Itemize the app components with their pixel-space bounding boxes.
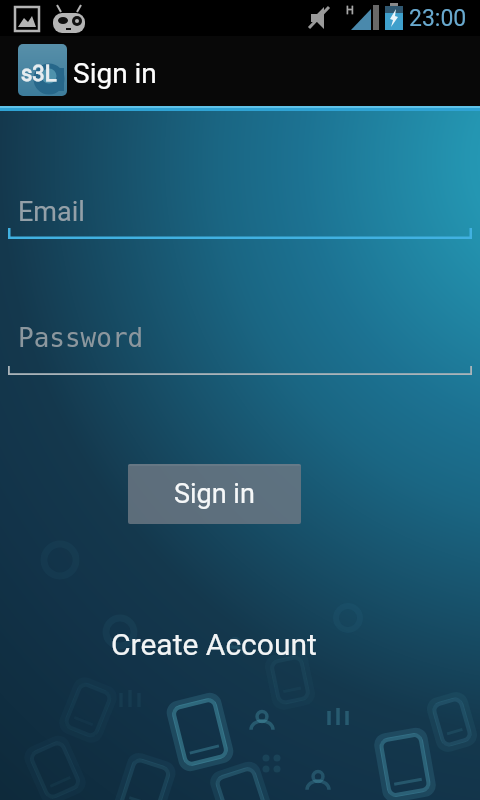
- staticText: s3L: [21, 61, 57, 87]
- staticText: Sign in: [174, 478, 255, 510]
- staticText: Email: [18, 196, 85, 228]
- staticText: Create Account: [111, 627, 317, 662]
- staticText: Sign in: [73, 57, 157, 90]
- button[interactable]: Create Account: [94, 616, 334, 672]
- button[interactable]: Sign in: [128, 464, 301, 524]
- staticText: H: [346, 4, 354, 17]
- button[interactable]: Password: [8, 306, 472, 375]
- button[interactable]: Email: [8, 170, 472, 239]
- staticText: Password: [18, 323, 144, 353]
- staticText: 23:00: [409, 5, 467, 32]
